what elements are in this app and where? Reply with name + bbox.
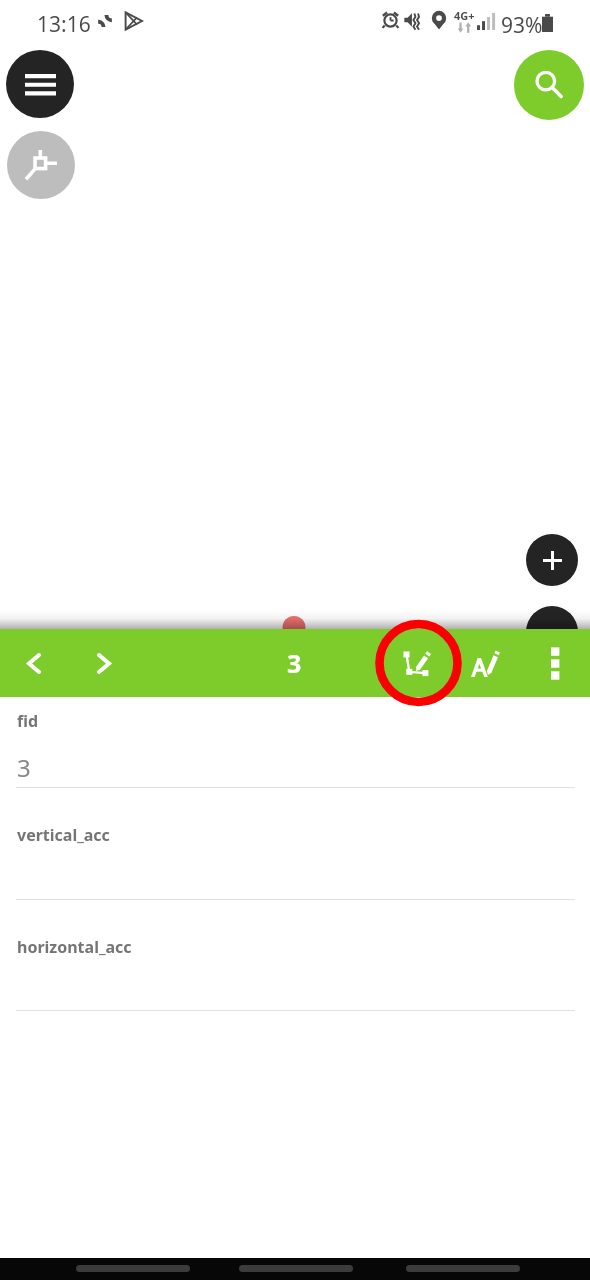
button[interactable]: Search (514, 50, 584, 120)
button[interactable]: Home (239, 1265, 353, 1272)
button[interactable]: More options (531, 639, 579, 687)
button[interactable]: Edit attributes (461, 639, 509, 687)
button[interactable]: Add (526, 534, 578, 586)
button[interactable]: Next (80, 639, 128, 687)
staticText: horizontal_acc (17, 936, 132, 958)
staticText: 3 (17, 751, 31, 784)
button[interactable]: 3 (270, 639, 318, 687)
staticText: fid (17, 710, 39, 732)
button[interactable]: GPS (7, 131, 75, 199)
button[interactable]: More actions (526, 606, 578, 658)
button[interactable]: Edit geometry (393, 639, 441, 687)
staticText: 4G+ (454, 8, 475, 23)
button[interactable]: Previous (10, 639, 58, 687)
button[interactable]: Menu (6, 50, 74, 118)
button[interactable]: Back (76, 1265, 190, 1272)
button[interactable]: Recents (406, 1265, 520, 1272)
staticText: 3 (287, 646, 302, 680)
staticText: 93% (501, 11, 543, 40)
staticText: vertical_acc (17, 824, 110, 846)
staticText: 13:16 (37, 10, 91, 39)
